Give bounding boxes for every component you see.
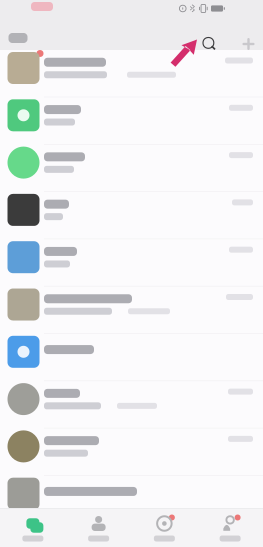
button[interactable]	[0, 192, 263, 239]
button[interactable]	[0, 50, 263, 97]
button[interactable]	[0, 97, 263, 145]
button[interactable]: Chats	[0, 508, 66, 547]
button[interactable]: Search	[196, 31, 222, 57]
button[interactable]	[0, 286, 263, 334]
button[interactable]	[0, 381, 263, 428]
button[interactable]	[0, 239, 263, 286]
button[interactable]: Discover	[131, 508, 197, 547]
button[interactable]: Me	[197, 508, 263, 547]
button[interactable]	[0, 476, 263, 523]
button[interactable]	[0, 145, 263, 192]
button[interactable]	[0, 428, 263, 476]
button[interactable]: New chat	[235, 31, 261, 57]
button[interactable]	[0, 334, 263, 381]
button[interactable]: Contacts	[66, 508, 132, 547]
